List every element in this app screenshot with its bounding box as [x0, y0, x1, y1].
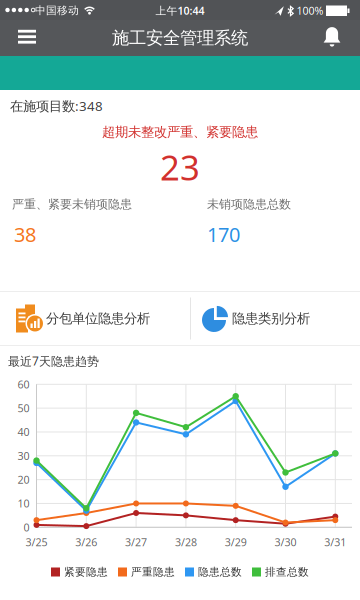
staticText: 20 — [17, 473, 29, 487]
staticText: 3/25 — [25, 535, 47, 549]
staticText: 40 — [17, 425, 29, 439]
staticText: 严重、紧要未销项隐患 — [12, 197, 132, 212]
staticText: 中国移动 — [35, 4, 79, 17]
staticText: 38 — [14, 221, 36, 248]
staticText: 23 — [160, 144, 200, 190]
button[interactable] — [0, 20, 54, 56]
staticText: 100% — [296, 3, 323, 18]
staticText: 3/26 — [75, 535, 97, 549]
staticText: 3/28 — [175, 535, 197, 549]
staticText: 3/27 — [125, 535, 147, 549]
button[interactable]: 分包单位隐患分析 — [0, 292, 190, 345]
staticText: 排查总数 — [265, 565, 309, 578]
staticText: 最近7天隐患趋势 — [8, 353, 99, 369]
button[interactable]: 隐患类别分析 — [191, 292, 360, 345]
staticText: 施工安全管理系统 — [112, 27, 248, 49]
staticText: 3/29 — [225, 535, 247, 549]
staticText: 3/31 — [324, 535, 346, 549]
staticText: 超期未整改严重、紧要隐患 — [102, 124, 258, 140]
staticText: 50 — [17, 401, 29, 415]
staticText: 0 — [23, 520, 29, 534]
staticText: 隐患类别分析 — [232, 310, 310, 327]
staticText: 未销项隐患总数 — [207, 197, 291, 212]
staticText: 紧要隐患 — [64, 565, 108, 578]
staticText: 严重隐患 — [131, 565, 175, 578]
staticText: 170 — [207, 221, 240, 248]
staticText: 在施项目数:348 — [10, 97, 103, 115]
staticText: 隐患总数 — [198, 565, 242, 578]
staticText: 分包单位隐患分析 — [46, 310, 150, 327]
staticText: 30 — [17, 449, 29, 463]
staticText: 上午10:44 — [155, 3, 204, 18]
button[interactable] — [310, 20, 354, 56]
staticText: 60 — [17, 377, 29, 391]
staticText: 10 — [17, 496, 29, 511]
staticText: 3/30 — [274, 535, 296, 549]
